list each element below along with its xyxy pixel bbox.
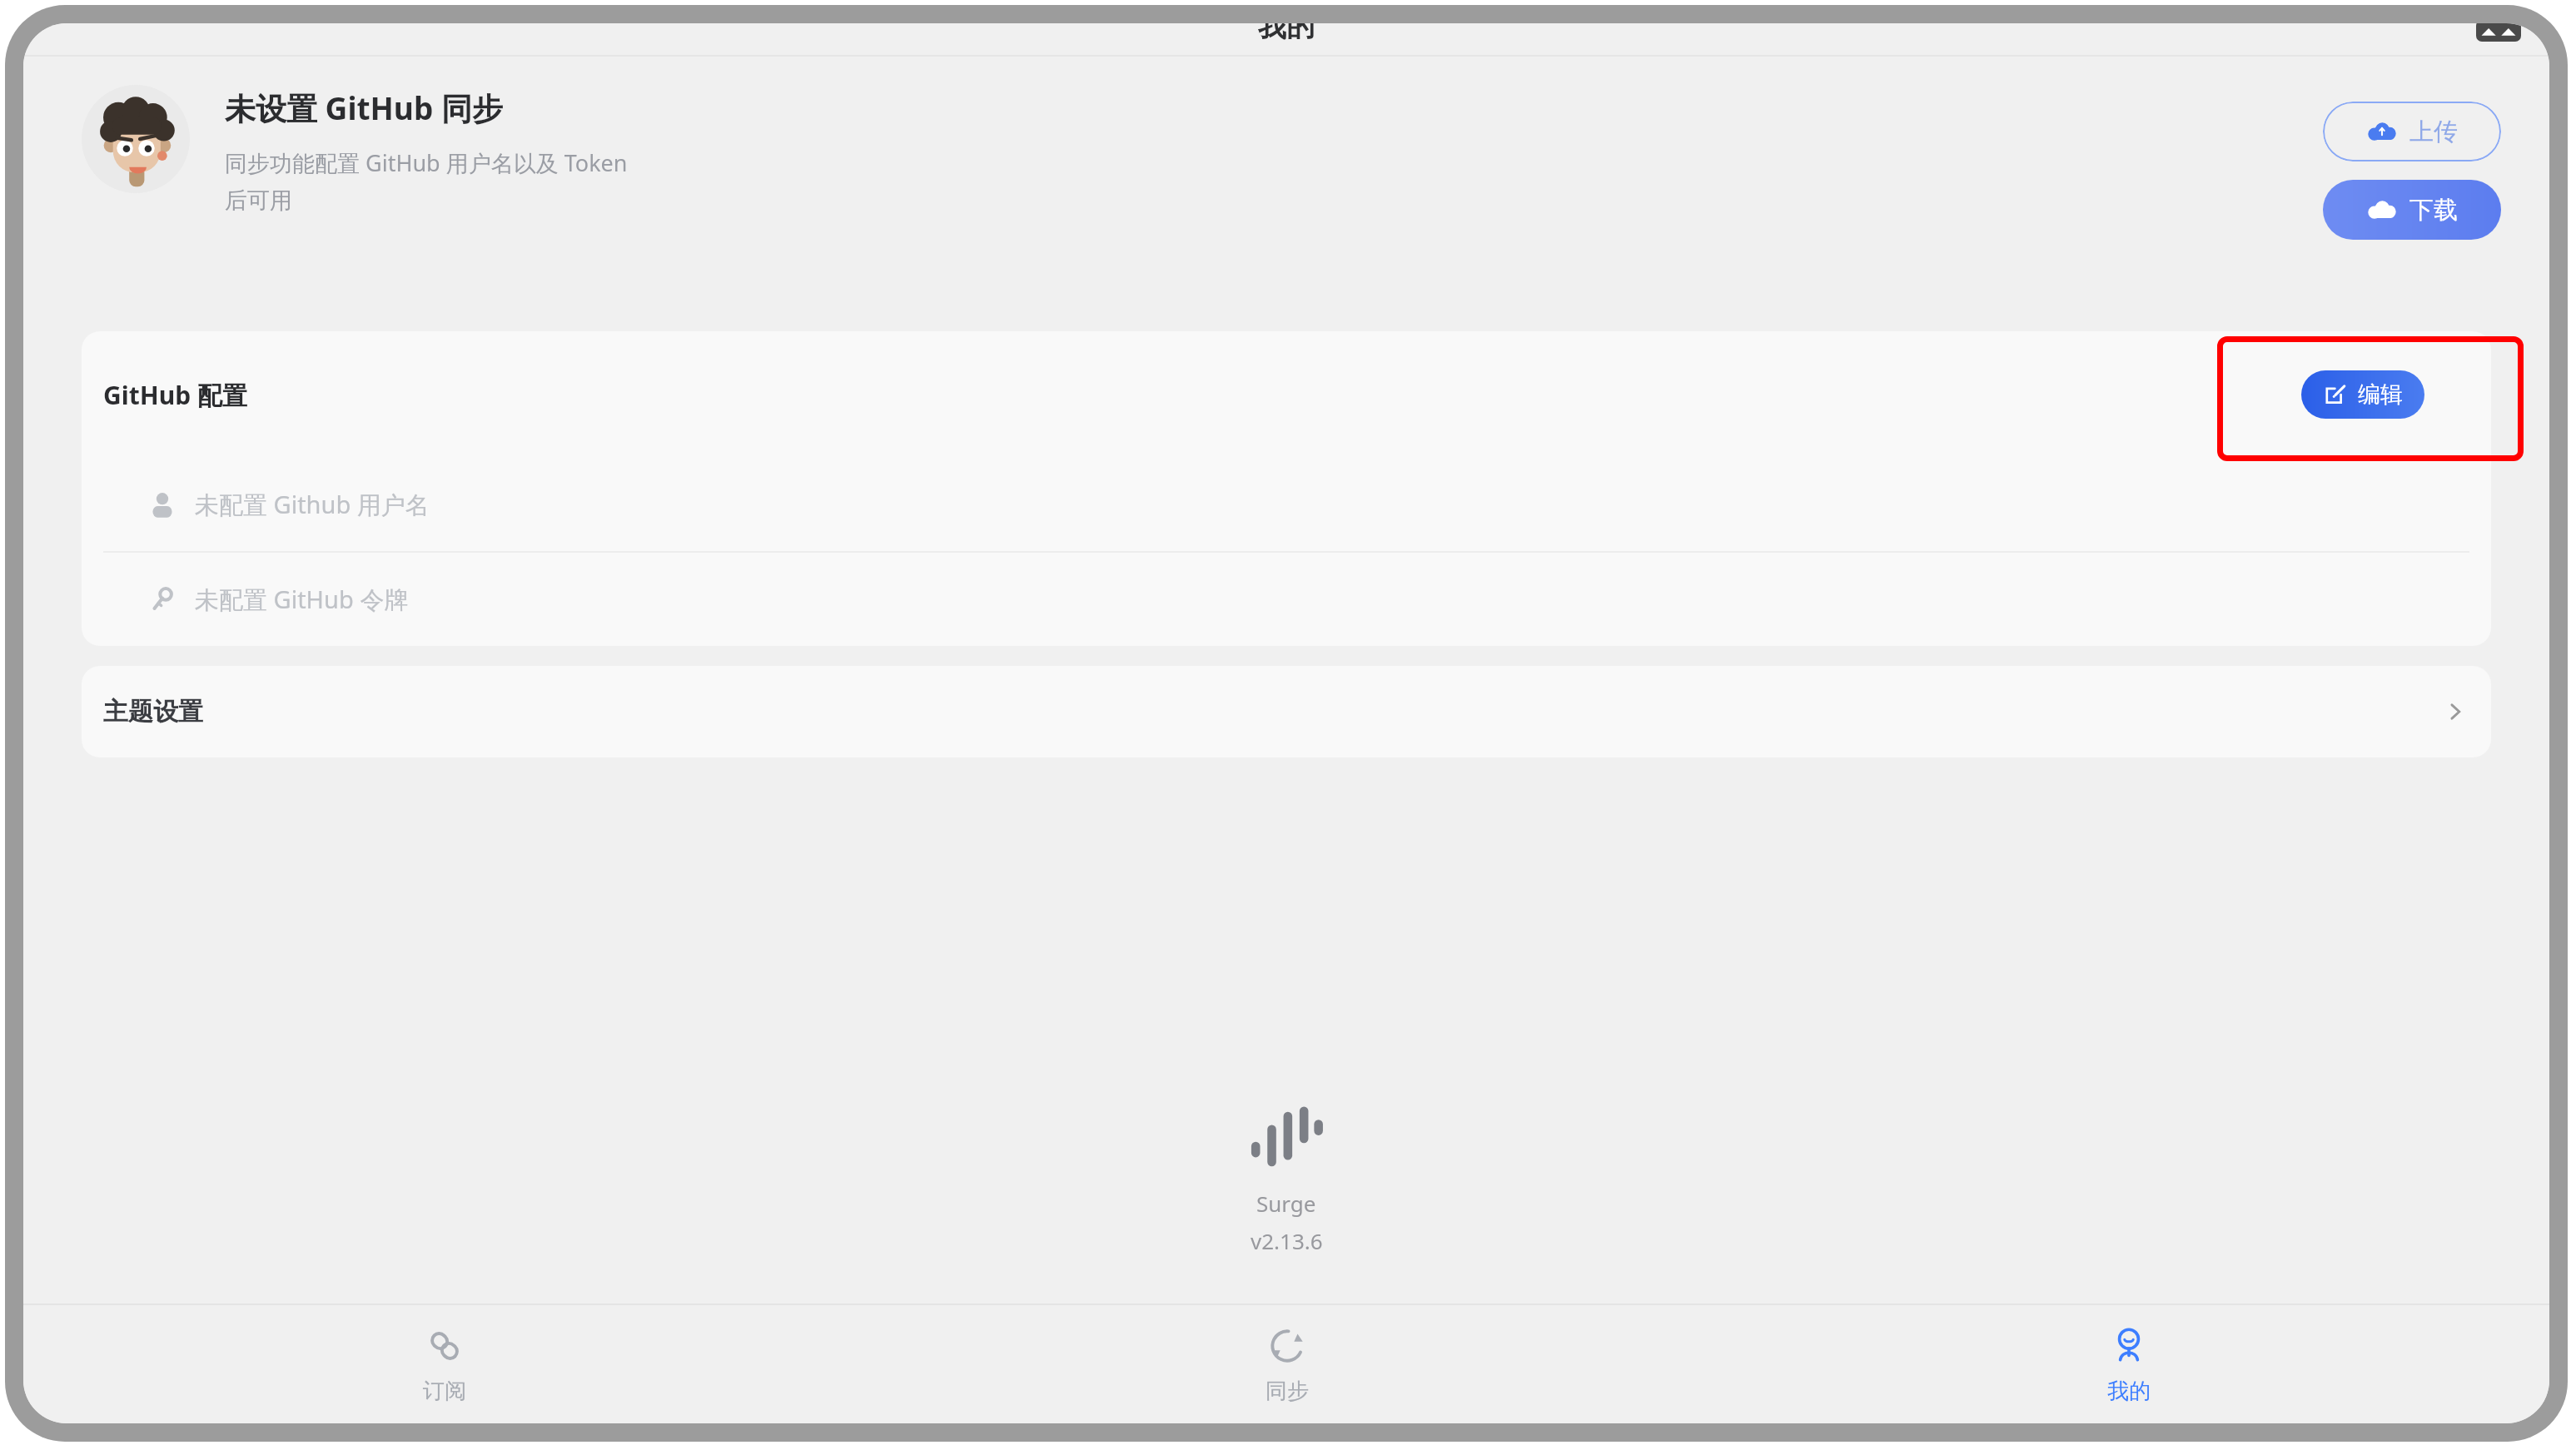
staticText: 未配置 Github 用户名 — [195, 488, 430, 521]
button[interactable]: 同步 — [866, 1305, 1708, 1423]
staticText: 同步功能配置 GitHub 用户名以及 Token — [225, 147, 628, 178]
staticText: v2.13.6 — [1251, 1226, 1323, 1255]
staticText: 我的 — [2107, 1378, 2151, 1405]
staticText: GitHub 配置 — [103, 378, 247, 412]
staticText: 未配置 GitHub 令牌 — [195, 583, 409, 616]
button[interactable]: 未配置 GitHub 令牌 — [82, 553, 2491, 646]
other: Status badge — [2476, 23, 2521, 42]
button[interactable]: 上传 — [2323, 102, 2501, 161]
staticText: 订阅 — [423, 1378, 466, 1405]
staticText: Surge — [1256, 1189, 1316, 1218]
button[interactable]: 编辑 — [2301, 370, 2424, 419]
button[interactable]: 下载 — [2323, 180, 2501, 240]
button[interactable]: 主题设置 — [82, 666, 2491, 757]
button[interactable]: 订阅 — [23, 1305, 866, 1423]
staticText: 未设置 GitHub 同步 — [225, 87, 503, 129]
staticText: 主题设置 — [103, 696, 203, 727]
button[interactable]: 我的 — [1708, 1305, 2549, 1423]
staticText: 下载 — [2409, 195, 2458, 226]
staticText: 上传 — [2409, 117, 2458, 147]
staticText: 编辑 — [2358, 380, 2403, 409]
staticText: 同步 — [1266, 1378, 1309, 1405]
button[interactable]: 未配置 Github 用户名 — [82, 458, 2491, 551]
staticText: 我的 — [1258, 23, 1315, 40]
staticText: 后可用 — [225, 186, 292, 215]
